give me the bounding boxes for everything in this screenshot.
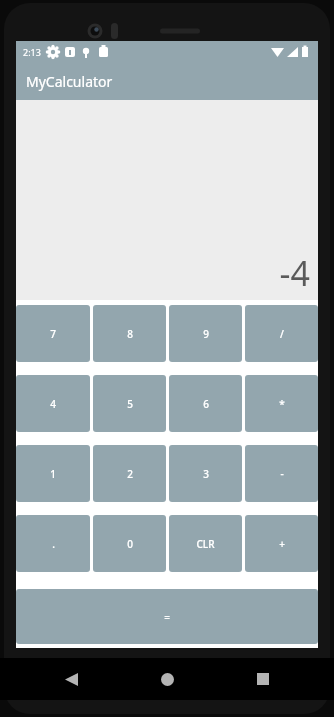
button[interactable]: 7 <box>16 305 90 362</box>
button[interactable]: Home <box>152 664 182 694</box>
staticText: + <box>279 537 285 551</box>
button[interactable]: 1 <box>16 445 90 502</box>
staticText: / <box>280 327 284 341</box>
staticText: 6 <box>203 397 209 411</box>
staticText: . <box>52 537 55 551</box>
button[interactable]: - <box>245 445 318 502</box>
button[interactable]: = <box>16 589 318 644</box>
button[interactable]: 3 <box>169 445 242 502</box>
staticText: 7 <box>50 327 56 341</box>
staticText: MyCalculator <box>26 72 113 91</box>
staticText: 2:13 <box>23 46 41 58</box>
button[interactable]: 0 <box>93 515 166 572</box>
button[interactable]: 6 <box>169 375 242 432</box>
staticText: 0 <box>127 537 133 551</box>
button[interactable]: 5 <box>93 375 166 432</box>
staticText: 4 <box>50 397 56 411</box>
staticText: 9 <box>203 327 209 341</box>
button[interactable]: 2 <box>93 445 166 502</box>
button[interactable]: Recent apps <box>248 664 278 694</box>
button[interactable]: . <box>16 515 90 572</box>
staticText: -4 <box>279 250 310 296</box>
button[interactable]: + <box>245 515 318 572</box>
button[interactable]: 8 <box>93 305 166 362</box>
button[interactable]: 4 <box>16 375 90 432</box>
staticText: * <box>279 397 285 411</box>
button[interactable]: 9 <box>169 305 242 362</box>
staticText: 2 <box>127 467 133 481</box>
staticText: 3 <box>203 467 209 481</box>
staticText: 5 <box>127 397 133 411</box>
button[interactable]: Back <box>56 664 86 694</box>
staticText: 1 <box>50 467 56 481</box>
button[interactable]: CLR <box>169 515 242 572</box>
button[interactable]: * <box>245 375 318 432</box>
staticText: 8 <box>127 327 133 341</box>
staticText: CLR <box>196 537 215 551</box>
staticText: = <box>164 610 170 624</box>
button[interactable]: / <box>245 305 318 362</box>
staticText: - <box>280 467 284 481</box>
